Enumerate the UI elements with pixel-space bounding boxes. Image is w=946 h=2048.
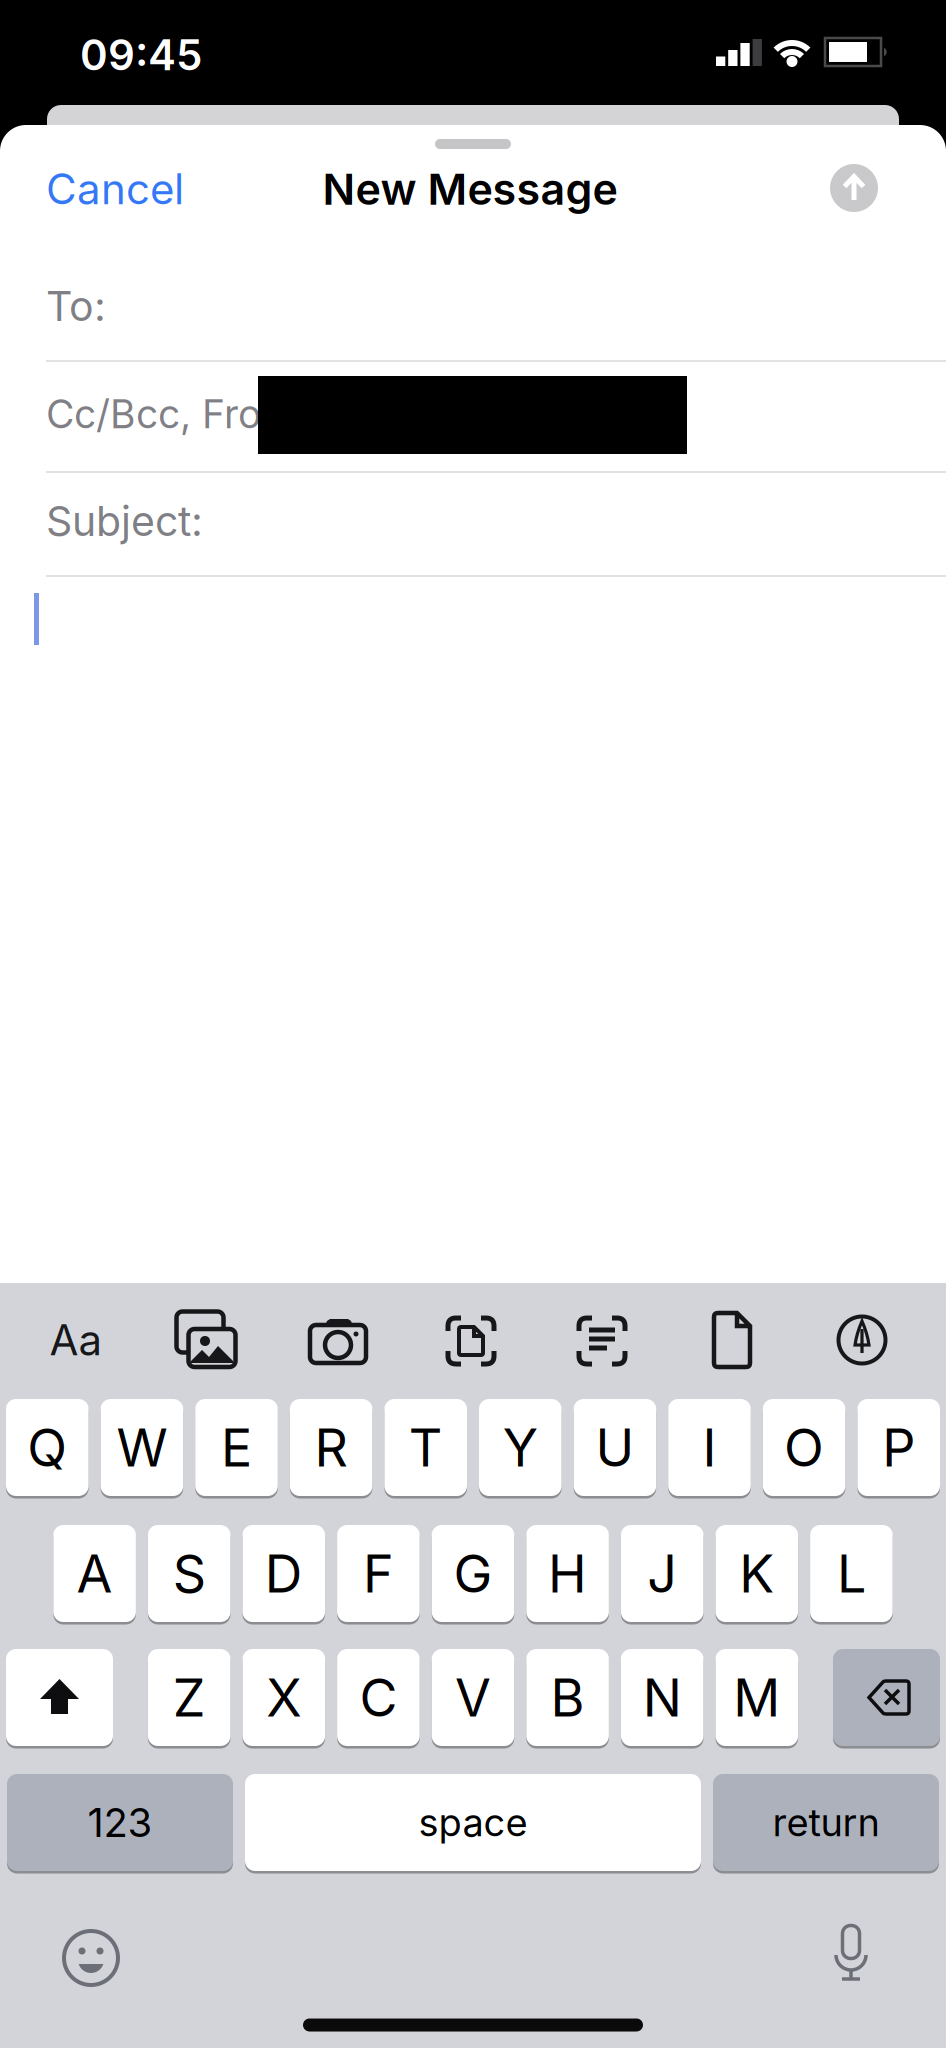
button[interactable]: Cancel (46, 164, 286, 214)
staticText: G (453, 1543, 492, 1604)
staticText: space (418, 1800, 527, 1845)
button[interactable] (821, 1925, 881, 1985)
staticText: 09:45 (80, 30, 202, 80)
button[interactable]: Z (148, 1649, 230, 1746)
staticText: O (784, 1417, 824, 1478)
staticText: D (265, 1543, 303, 1604)
staticText: Aa (49, 1315, 102, 1365)
staticText: R (315, 1417, 348, 1478)
staticText: Y (503, 1417, 538, 1478)
button[interactable]: Subject: (46, 497, 446, 545)
button[interactable]: T (384, 1399, 467, 1496)
button[interactable]: V (432, 1649, 514, 1746)
staticText: T (409, 1417, 443, 1478)
button[interactable]: R (290, 1399, 372, 1496)
staticText: Z (173, 1667, 206, 1728)
button[interactable]: H (526, 1525, 609, 1622)
button[interactable] (697, 1309, 767, 1371)
button[interactable]: O (763, 1399, 845, 1496)
button[interactable]: X (242, 1649, 325, 1746)
staticText: N (643, 1667, 682, 1728)
button[interactable]: Y (479, 1399, 562, 1496)
staticText: 123 (87, 1799, 152, 1846)
staticText: U (595, 1417, 634, 1478)
button[interactable]: D (242, 1525, 325, 1622)
button[interactable]: N (621, 1649, 703, 1746)
button[interactable]: 123 (7, 1774, 233, 1871)
button[interactable]: return (713, 1774, 939, 1871)
staticText: To: (46, 282, 106, 330)
staticText: C (359, 1667, 397, 1728)
staticText: K (739, 1543, 774, 1604)
button[interactable]: F (337, 1525, 420, 1622)
button[interactable]: P (857, 1399, 940, 1496)
staticText: M (733, 1667, 780, 1728)
button[interactable]: Q (6, 1399, 89, 1496)
button[interactable] (6, 1649, 113, 1746)
button[interactable]: S (148, 1525, 230, 1622)
button[interactable] (171, 1309, 241, 1371)
button[interactable] (567, 1309, 637, 1371)
button[interactable]: I (668, 1399, 751, 1496)
button[interactable]: G (432, 1525, 514, 1622)
staticText: S (173, 1543, 206, 1604)
button[interactable]: space (245, 1774, 701, 1871)
staticText: P (882, 1417, 915, 1478)
button[interactable]: U (574, 1399, 656, 1496)
button[interactable]: Cc/Bcc, From: (46, 391, 446, 437)
staticText: A (77, 1543, 113, 1604)
staticText: I (702, 1417, 716, 1478)
button[interactable]: L (810, 1525, 893, 1622)
button[interactable] (830, 164, 878, 212)
button[interactable]: W (101, 1399, 183, 1496)
staticText: Q (27, 1417, 67, 1478)
button[interactable]: A (53, 1525, 136, 1622)
staticText: H (548, 1543, 587, 1604)
staticText: return (772, 1800, 879, 1845)
button[interactable] (436, 1309, 506, 1371)
button[interactable]: B (526, 1649, 609, 1746)
staticText: W (116, 1417, 167, 1478)
button[interactable]: Aa (49, 1315, 102, 1365)
button[interactable]: K (715, 1525, 798, 1622)
staticText: Cancel (46, 164, 184, 214)
button[interactable] (827, 1309, 897, 1371)
staticText: F (363, 1543, 394, 1604)
button[interactable]: M (715, 1649, 798, 1746)
button[interactable]: To: (46, 282, 446, 330)
button[interactable]: C (337, 1649, 420, 1746)
staticText: B (551, 1667, 585, 1728)
staticText: X (266, 1667, 301, 1728)
button[interactable] (61, 1928, 121, 1988)
staticText: L (837, 1543, 866, 1604)
button[interactable]: E (195, 1399, 278, 1496)
staticText: E (221, 1417, 252, 1478)
staticText: V (455, 1667, 491, 1728)
button[interactable]: J (621, 1525, 703, 1622)
button[interactable] (303, 1309, 373, 1371)
staticText: Subject: (46, 497, 203, 545)
staticText: New Message (322, 164, 617, 214)
staticText: J (647, 1543, 677, 1604)
button[interactable] (833, 1649, 940, 1746)
staticText: Cc/Bcc, From: (46, 391, 306, 437)
